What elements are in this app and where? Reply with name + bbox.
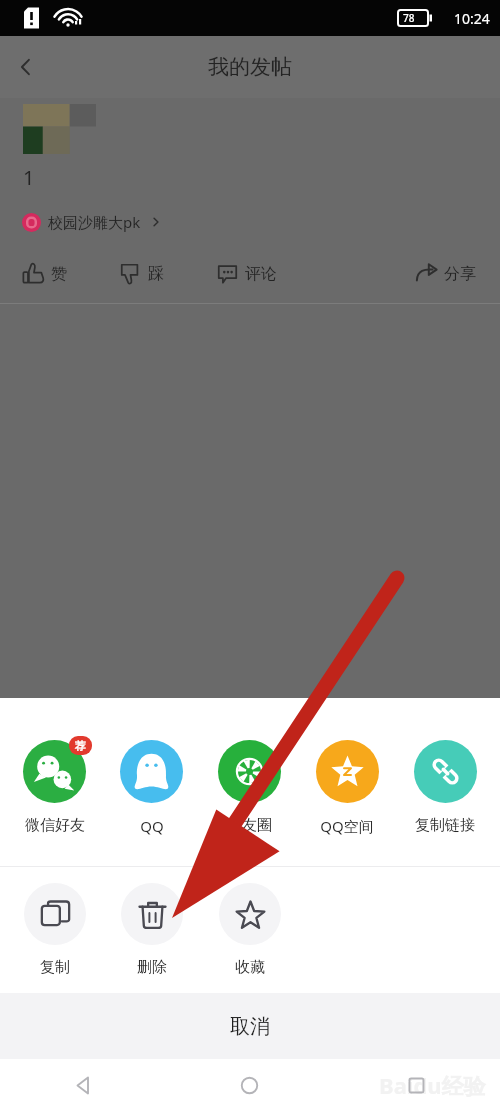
button[interactable]: 校园沙雕大pk: [22, 207, 162, 237]
staticText: 分享: [444, 264, 476, 284]
button[interactable]: 收藏: [201, 867, 299, 993]
button[interactable]: 踩: [119, 259, 164, 288]
staticText: Baidu经验: [379, 1070, 486, 1100]
staticText: 收藏: [235, 958, 265, 977]
button[interactable]: 分享: [415, 259, 476, 288]
button[interactable]: Recents: [333, 1059, 500, 1111]
button[interactable]: 复制链接: [396, 709, 494, 866]
staticText: QQ: [140, 816, 164, 836]
staticText: 1: [23, 164, 35, 191]
staticText: 荐: [75, 739, 86, 753]
button[interactable]: QQ空间: [298, 709, 396, 866]
staticText: 78: [403, 11, 415, 25]
button[interactable]: 赞: [22, 259, 67, 288]
button[interactable]: 荐: [6, 709, 103, 866]
staticText: 踩: [148, 264, 164, 284]
button[interactable]: Home: [166, 1059, 333, 1111]
button[interactable]: 复制: [6, 867, 103, 993]
button[interactable]: 删除: [103, 867, 201, 993]
button[interactable]: QQ: [103, 709, 200, 866]
button[interactable]: 评论: [216, 259, 277, 288]
staticText: 微信好友: [25, 816, 85, 835]
staticText: 赞: [51, 264, 67, 284]
staticText: 复制: [40, 958, 70, 977]
staticText: 朋友圈: [227, 816, 272, 835]
staticText: QQ空间: [320, 816, 374, 836]
staticText: 取消: [230, 1014, 270, 1039]
button[interactable]: 朋友圈: [200, 709, 298, 866]
button[interactable]: Back: [0, 41, 52, 93]
button[interactable]: 取消: [0, 993, 500, 1059]
button[interactable]: Back: [0, 1059, 166, 1111]
staticText: 删除: [137, 958, 167, 977]
staticText: 我的发帖: [208, 54, 292, 80]
staticText: 复制链接: [415, 816, 475, 835]
staticText: 评论: [245, 264, 277, 284]
staticText: 10:24: [454, 9, 490, 28]
staticText: 校园沙雕大pk: [48, 212, 141, 232]
